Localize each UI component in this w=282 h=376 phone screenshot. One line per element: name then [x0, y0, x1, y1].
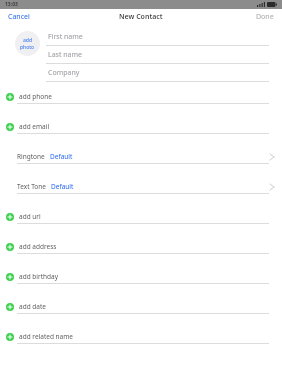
staticText: Done: [256, 12, 274, 22]
staticText: Text Tone: [17, 182, 46, 191]
staticText: add address: [19, 242, 57, 251]
button[interactable]: Cancel: [0, 10, 38, 24]
staticText: add: [23, 37, 32, 44]
button[interactable]: add birthday: [0, 270, 282, 284]
button[interactable]: add date: [0, 300, 282, 314]
staticText: add url: [19, 212, 41, 221]
button[interactable]: Last name: [46, 46, 282, 64]
staticText: add email: [19, 122, 50, 131]
staticText: Default: [51, 182, 74, 191]
staticText: Cancel: [8, 12, 30, 22]
staticText: add birthday: [19, 272, 59, 281]
button[interactable]: First name: [46, 28, 282, 46]
button[interactable]: Company: [46, 64, 282, 82]
button[interactable]: Add photo: [15, 31, 40, 56]
button[interactable]: add email: [0, 120, 282, 134]
staticText: New Contact: [119, 12, 163, 22]
button[interactable]: Text Tone: [0, 180, 282, 194]
button[interactable]: add related name: [0, 330, 282, 344]
staticText: photo: [20, 44, 35, 51]
button[interactable]: add address: [0, 240, 282, 254]
staticText: First name: [48, 32, 83, 42]
button[interactable]: add phone: [0, 90, 282, 104]
staticText: Company: [48, 68, 80, 78]
button[interactable]: Ringtone: [0, 150, 282, 164]
staticText: Last name: [48, 50, 83, 60]
staticText: 13:03: [5, 1, 18, 8]
staticText: Ringtone: [17, 152, 45, 161]
staticText: add phone: [19, 92, 52, 101]
button[interactable]: add url: [0, 210, 282, 224]
staticText: add related name: [19, 332, 73, 341]
button[interactable]: Done: [248, 10, 282, 24]
staticText: add date: [19, 302, 46, 311]
staticText: Default: [50, 152, 73, 161]
